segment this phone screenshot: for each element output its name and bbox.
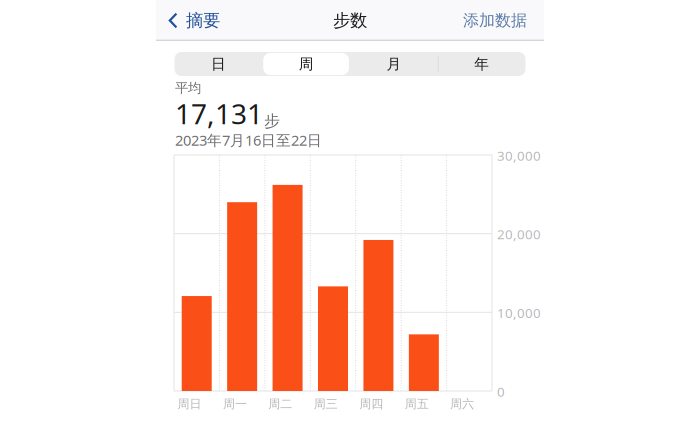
staticText: 月 [386, 55, 401, 73]
staticText: 步 [264, 111, 280, 131]
button[interactable]: 添加数据 [463, 4, 527, 37]
staticText: 摘要 [186, 10, 220, 31]
staticText: 周日 [177, 397, 201, 411]
staticText: 10,000 [497, 304, 541, 322]
button[interactable]: 周 [262, 52, 350, 76]
staticText: 周 [299, 55, 314, 73]
staticText: 周四 [359, 397, 383, 411]
button[interactable]: 摘要 [168, 3, 220, 38]
staticText: 年 [474, 55, 489, 73]
staticText: 周二 [268, 397, 292, 411]
button[interactable]: 日 [174, 52, 262, 76]
staticText: 添加数据 [463, 11, 527, 30]
staticText: 平均 [175, 80, 201, 96]
staticText: 周一 [223, 397, 247, 411]
button[interactable]: 年 [438, 52, 526, 76]
button[interactable]: 月 [350, 52, 438, 76]
staticText: 2023年7月16日至22日 [175, 130, 322, 150]
staticText: 周六 [450, 397, 474, 411]
staticText: 17,131 [175, 95, 263, 132]
staticText: 日 [211, 55, 226, 73]
staticText: 周三 [314, 397, 338, 411]
staticText: 步数 [333, 10, 367, 31]
staticText: 0 [497, 383, 505, 400]
staticText: 30,000 [497, 147, 541, 164]
staticText: 20,000 [497, 225, 541, 243]
staticText: 周五 [405, 397, 429, 411]
